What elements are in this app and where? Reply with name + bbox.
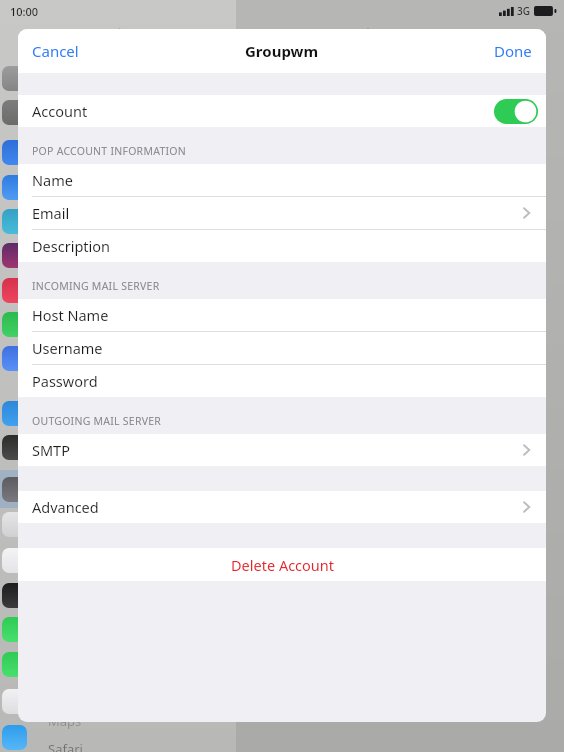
button[interactable]: Host Name xyxy=(18,299,546,331)
staticText: Account xyxy=(32,101,88,121)
button[interactable]: Name xyxy=(18,164,546,196)
staticText: Advanced xyxy=(32,497,99,517)
staticText: Password & Accounts xyxy=(300,23,457,43)
staticText: 3G xyxy=(517,4,530,18)
staticText: Password xyxy=(32,371,98,391)
button[interactable]: SMTP xyxy=(18,434,546,466)
staticText: Groupwm xyxy=(245,41,319,61)
staticText: 10:00 xyxy=(10,4,39,19)
staticText: Delete Account xyxy=(231,555,334,575)
button[interactable]: Account xyxy=(18,95,546,127)
staticText: INCOMING MAIL SERVER xyxy=(32,279,160,293)
button[interactable]: Username xyxy=(18,332,546,364)
staticText: Description xyxy=(32,236,111,256)
staticText: Host Name xyxy=(32,305,109,325)
button[interactable]: Email xyxy=(18,197,546,229)
staticText: Name xyxy=(32,170,73,190)
button[interactable]: Description xyxy=(18,230,546,262)
button[interactable]: Advanced xyxy=(18,491,546,523)
staticText: OUTGOING MAIL SERVER xyxy=(32,414,162,428)
staticText: POP ACCOUNT INFORMATION xyxy=(32,144,186,158)
staticText: Safari xyxy=(48,740,83,752)
staticText: Maps xyxy=(48,712,82,730)
staticText: Cancel xyxy=(32,41,79,61)
staticText: Username xyxy=(32,338,103,358)
button[interactable]: Password xyxy=(18,365,546,397)
button[interactable]: Cancel xyxy=(18,30,93,72)
staticText: Done xyxy=(494,41,532,61)
staticText: Email xyxy=(32,203,70,223)
button[interactable]: Account on xyxy=(494,99,538,124)
staticText: SMTP xyxy=(32,440,70,460)
staticText: Settings xyxy=(88,23,148,43)
button[interactable]: Done xyxy=(480,30,546,72)
button[interactable]: Delete Account xyxy=(18,548,546,581)
